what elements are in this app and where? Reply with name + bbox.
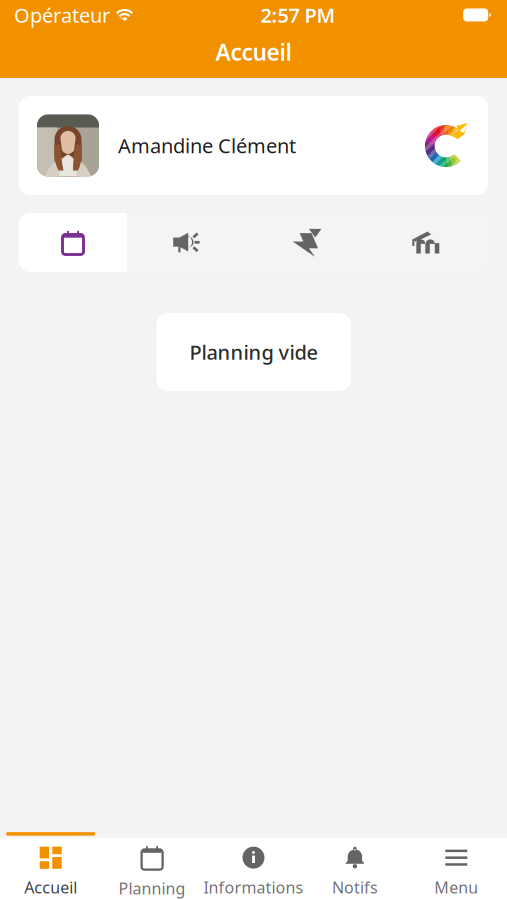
staticText: 2:57 PM: [260, 2, 335, 28]
button[interactable]: Planning: [101, 838, 203, 900]
staticText: Opérateur: [14, 2, 110, 28]
staticText: Accueil: [215, 37, 291, 67]
staticText: Amandine Clément: [118, 132, 296, 159]
staticText: Planning vide: [189, 339, 317, 365]
staticText: Notifs: [332, 877, 378, 898]
staticText: Menu: [434, 877, 478, 898]
button[interactable]: Annonces: [127, 213, 247, 272]
button[interactable]: Moodle: [367, 213, 488, 272]
button[interactable]: Notes: [247, 213, 367, 272]
button[interactable]: Accueil: [0, 838, 101, 900]
button[interactable]: Informations: [203, 838, 304, 900]
staticText: Accueil: [24, 877, 77, 898]
button[interactable]: Menu: [406, 838, 507, 900]
staticText: Informations: [203, 877, 303, 898]
button[interactable]: Planning: [19, 213, 127, 272]
button[interactable]: Amandine Clément: [19, 96, 488, 195]
staticText: Planning: [119, 878, 186, 899]
button[interactable]: Notifs: [304, 838, 406, 900]
